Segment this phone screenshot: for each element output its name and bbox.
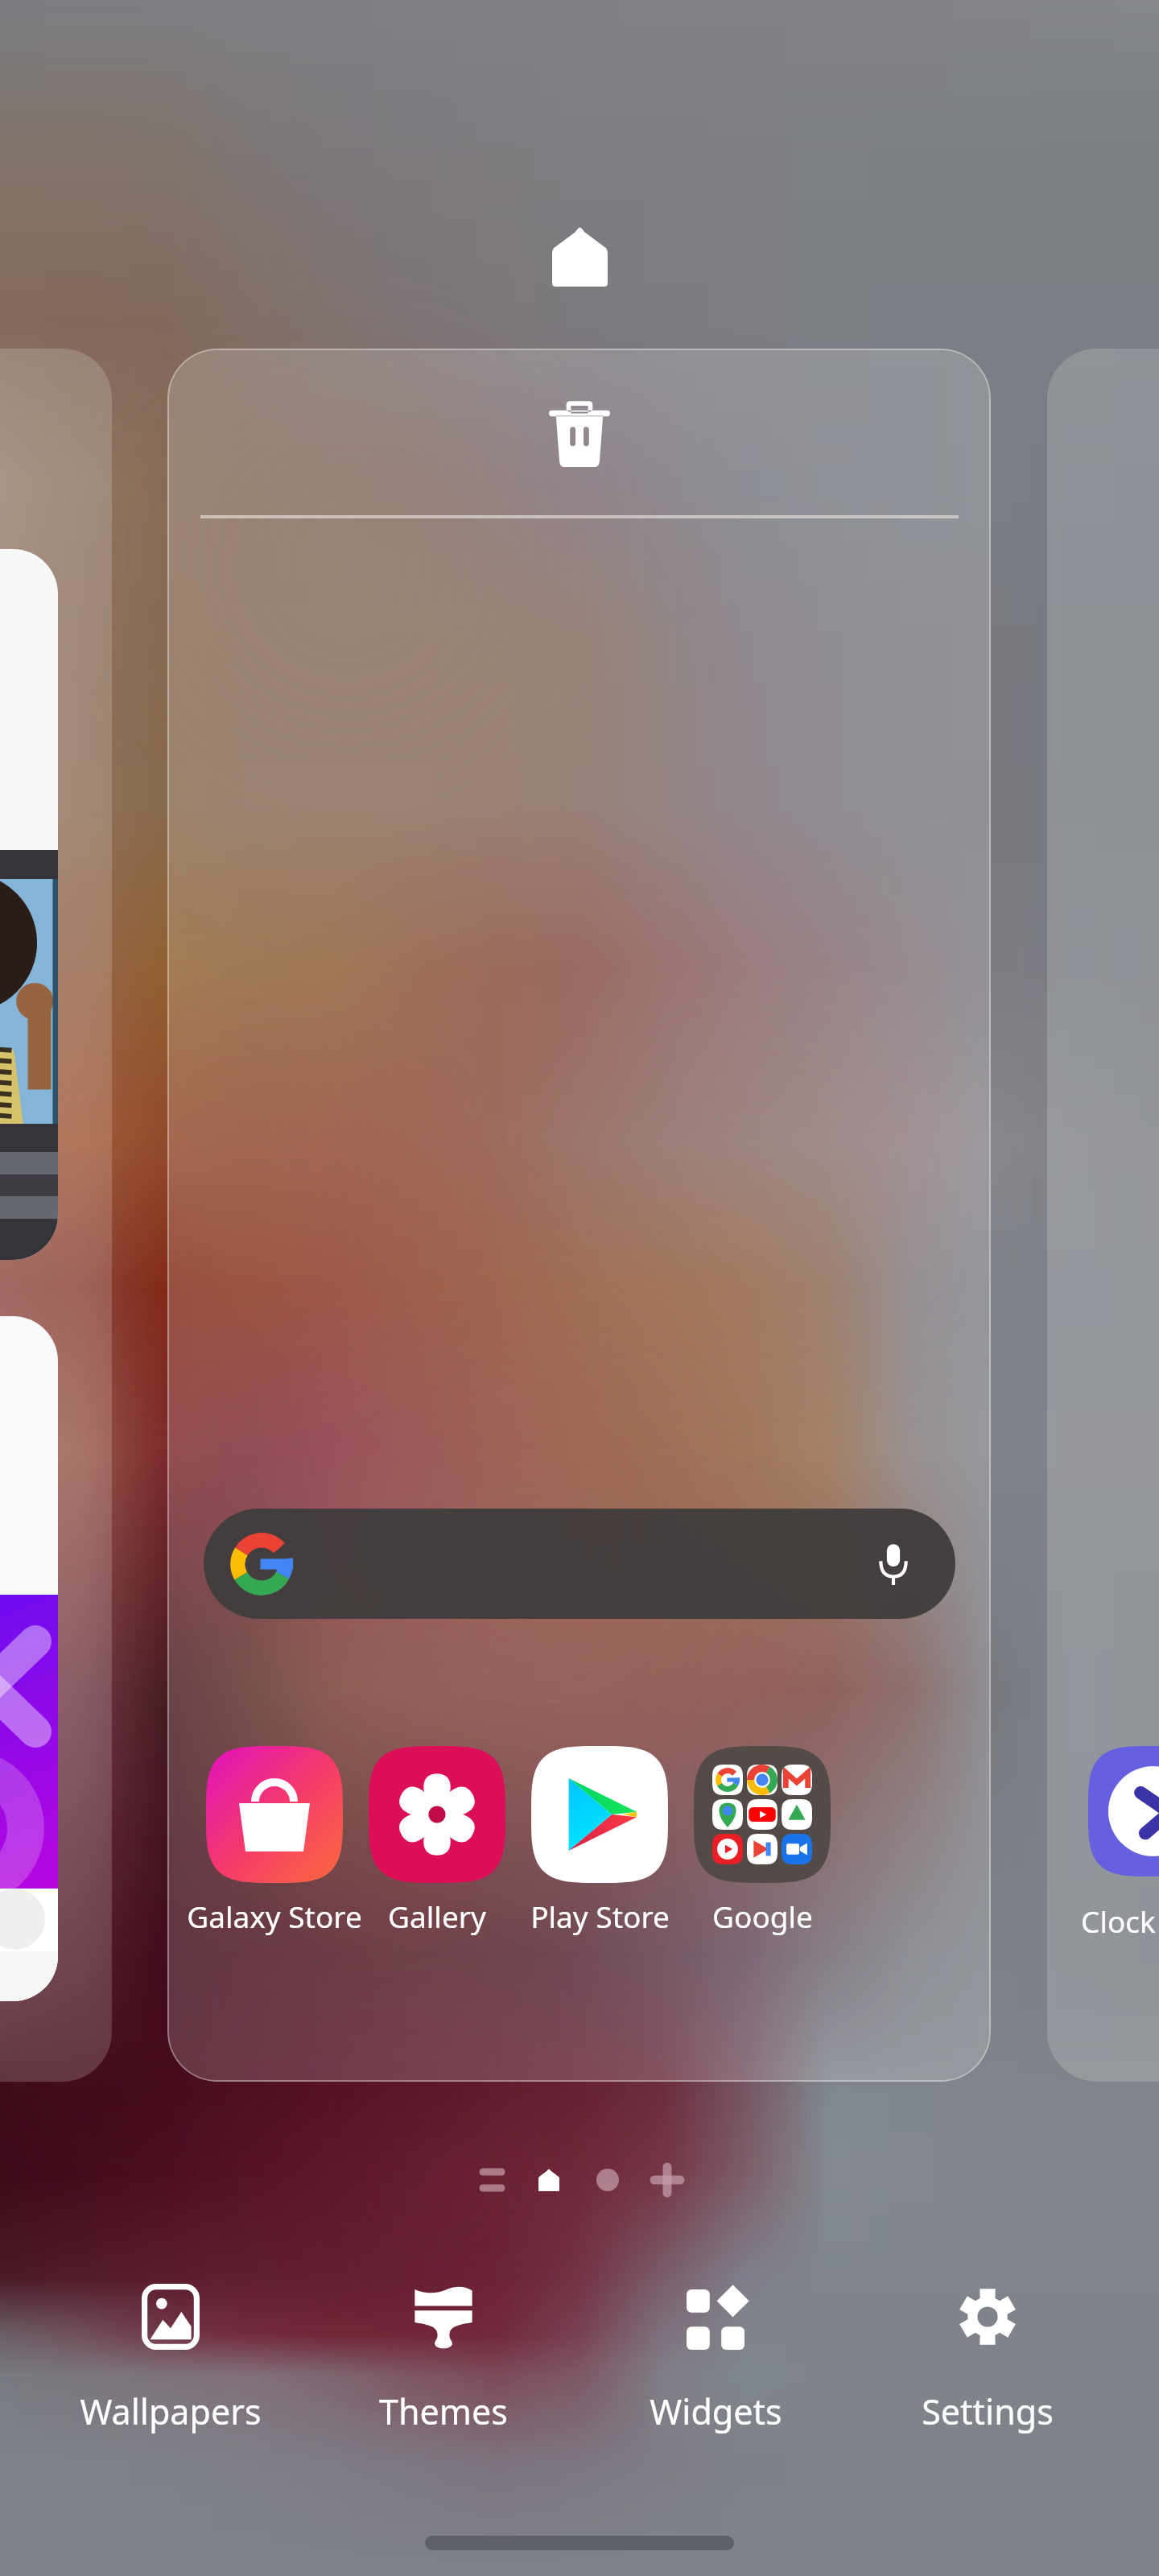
button[interactable]: Widgets [583,2270,848,2435]
button[interactable]: Remove page [167,349,991,2082]
staticText: Themes [379,2388,508,2435]
button[interactable]: Wallpapers [38,2270,303,2435]
other: Widgets [687,2284,744,2350]
button[interactable]: App list page [460,2148,524,2212]
staticText: Galaxy Store [187,1896,362,1936]
button[interactable]: Home page [517,2148,581,2212]
other: Settings [959,2284,1017,2350]
button[interactable]: Home screen [528,204,632,311]
button[interactable]: Voice search [204,1509,955,1619]
other: Themes [415,2284,472,2350]
button[interactable]: Google [641,1746,883,1936]
button[interactable]: Clock [1047,349,1159,2082]
staticText: Wallpapers [80,2388,262,2435]
button[interactable]: Gallery [316,1746,558,1936]
button[interactable]: Add page [635,2148,699,2212]
button[interactable]: Themes [311,2270,576,2435]
button[interactable]: Remove page [525,376,634,491]
staticText: Clock [1081,1901,1156,1941]
button[interactable] [0,349,112,2082]
other: Voice search [861,1532,926,1596]
button[interactable]: Page 3 [575,2148,640,2212]
staticText: Settings [922,2388,1054,2435]
button[interactable]: Settings [855,2270,1120,2435]
staticText: Widgets [650,2388,782,2435]
other: Wallpapers [142,2284,200,2350]
button[interactable]: Play Store [479,1746,720,1936]
staticText: Google [712,1896,813,1936]
button[interactable]: Galaxy Store [167,1746,395,1936]
staticText: Gallery [388,1896,486,1936]
staticText: Play Store [530,1896,670,1936]
